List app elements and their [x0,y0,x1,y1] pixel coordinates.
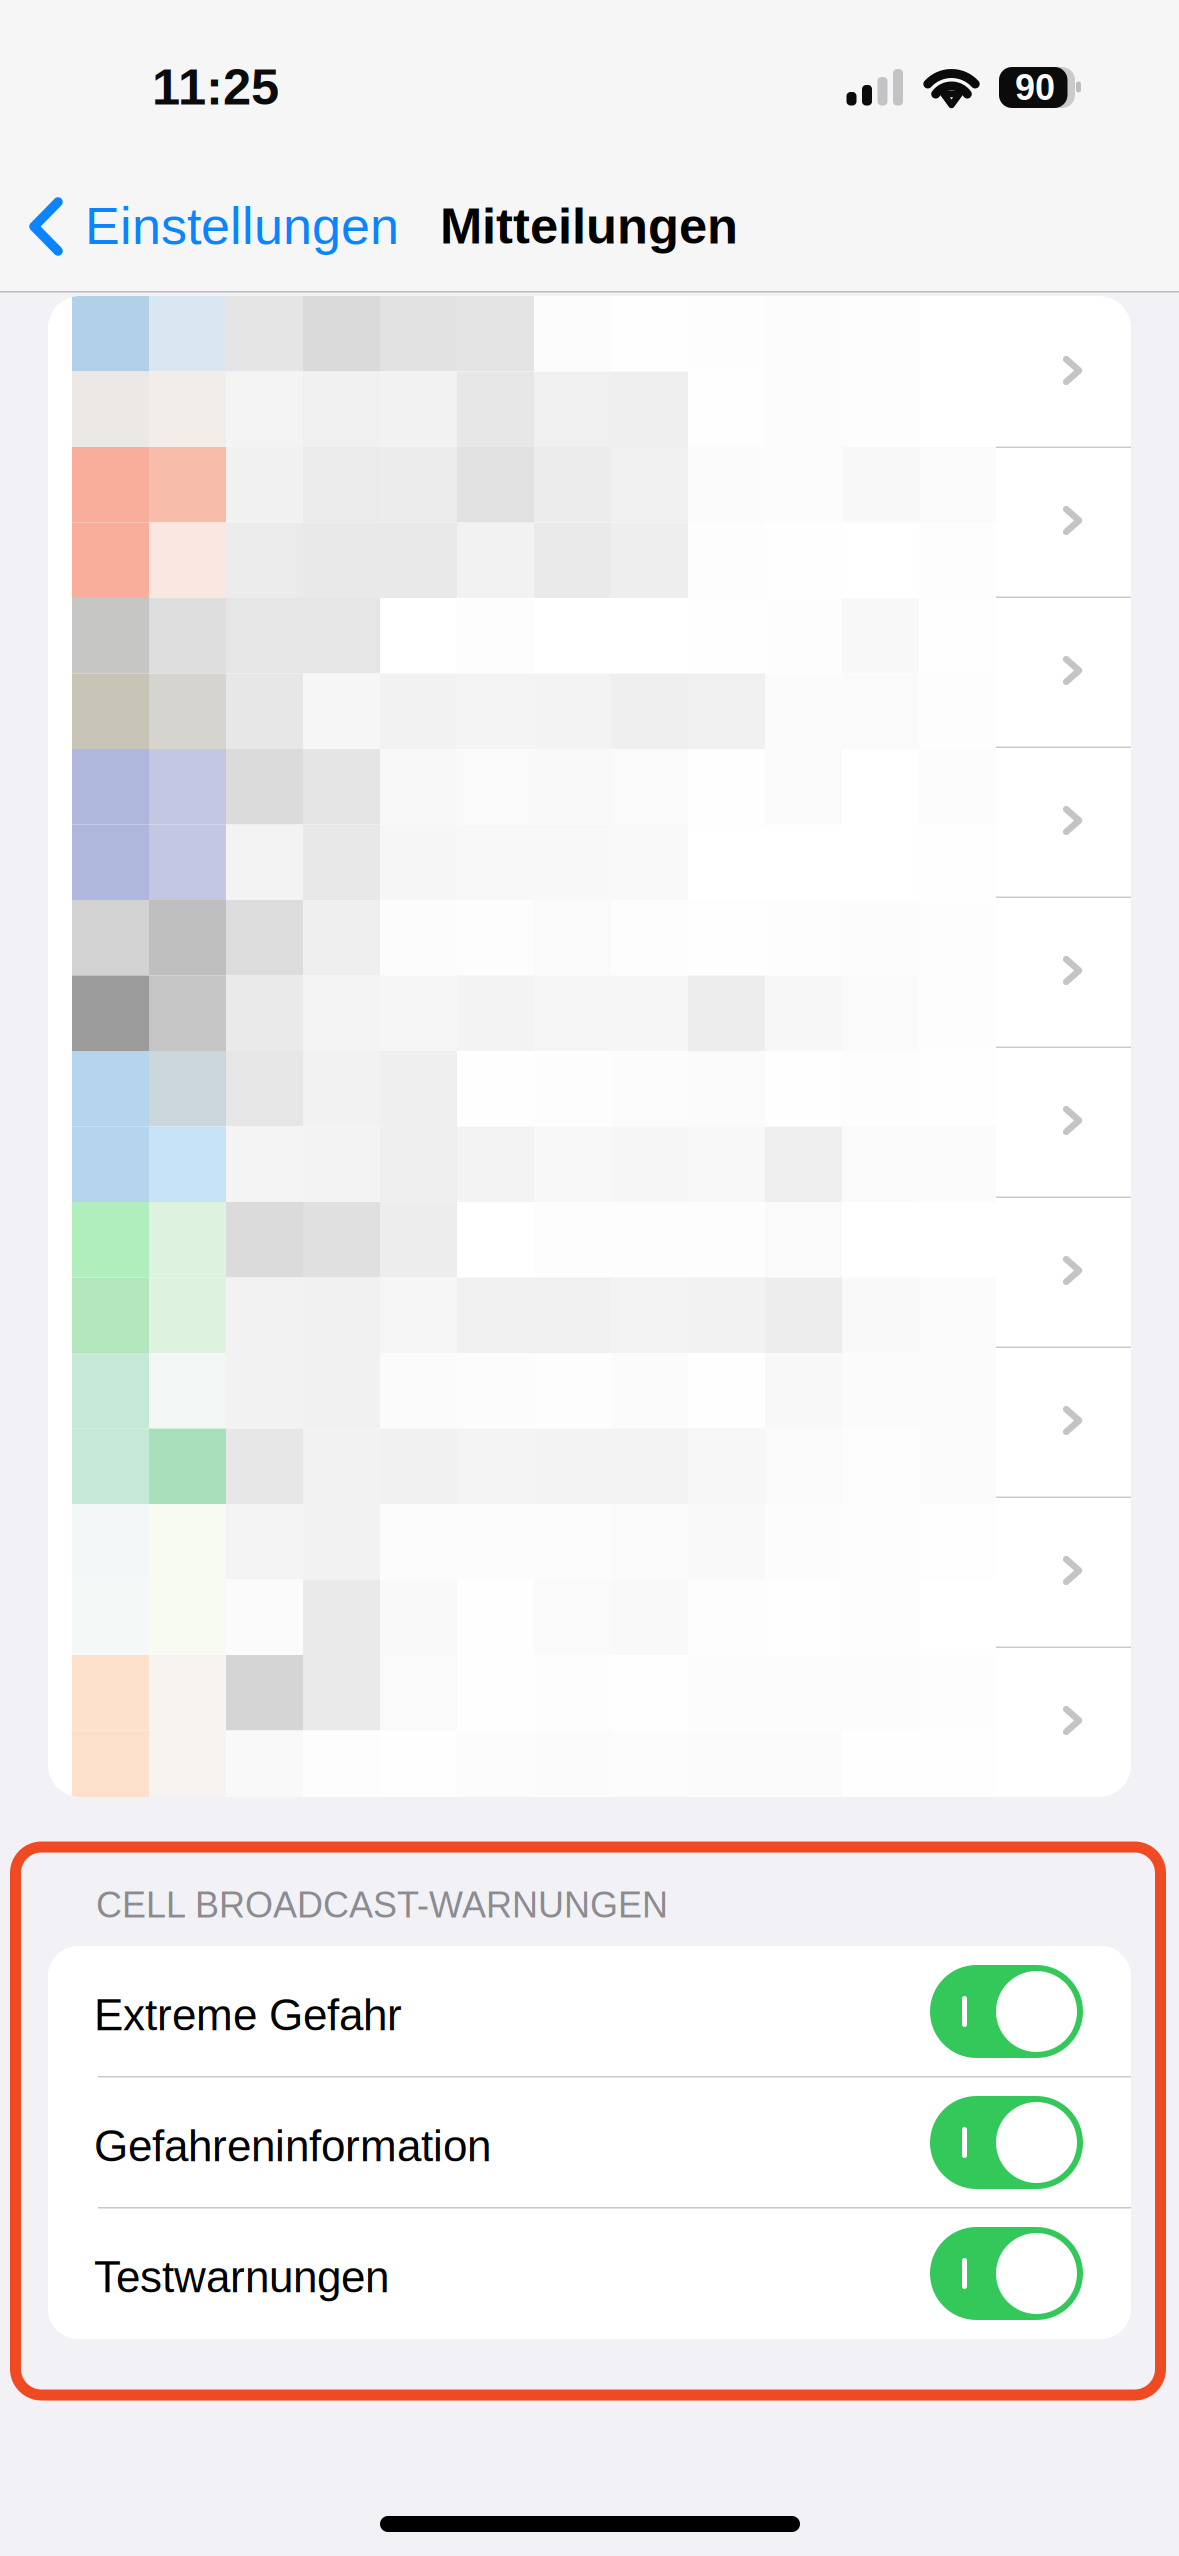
button[interactable]: App notification settings [48,596,1131,746]
staticText: Gefahreninformation [94,2121,491,2171]
button[interactable]: App notification settings [48,1496,1131,1646]
staticText: CELL BROADCAST-WARNUNGEN [96,1885,668,1925]
staticText: Testwarnungen [94,2252,389,2302]
staticText: 90 [1015,67,1055,108]
button[interactable]: App notification settings [48,1196,1131,1346]
staticText: Extreme Gefahr [94,1990,402,2040]
staticText: Einstellungen [85,197,399,255]
button[interactable]: Gefahreninformation [48,2077,1131,2208]
button[interactable]: App notification settings [48,746,1131,896]
button[interactable]: App notification settings [48,296,1131,446]
button[interactable]: App notification settings [48,446,1131,596]
button[interactable]: App notification settings [48,1646,1131,1796]
button[interactable]: Einstellungen [0,176,450,276]
button[interactable]: Testwarnungen [48,2208,1131,2339]
staticText: 11:25 [152,59,279,115]
button[interactable]: App notification settings [48,896,1131,1046]
button[interactable]: App notification settings [48,1046,1131,1196]
staticText: Mitteilungen [440,198,738,254]
button[interactable]: App notification settings [48,1346,1131,1496]
button[interactable]: Extreme Gefahr [48,1946,1131,2077]
